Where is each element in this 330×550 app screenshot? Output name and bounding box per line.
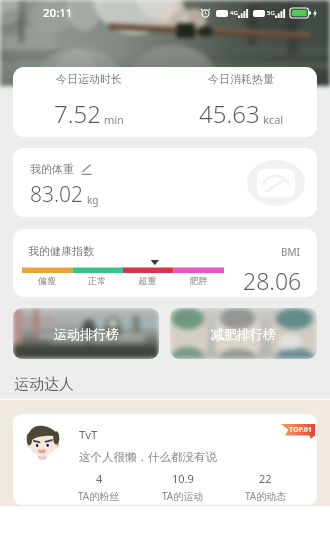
staticText: BMI — [281, 245, 300, 259]
staticText: 5G — [267, 9, 275, 17]
staticText: 7.52 — [54, 97, 101, 130]
staticText: 10.9 — [172, 471, 194, 486]
staticText: 这个人很懒，什么都没有说 — [79, 450, 217, 464]
staticText: 运动达人 — [14, 375, 74, 394]
staticText: 20:11 — [43, 5, 73, 21]
staticText: 运动排行榜 — [54, 326, 119, 342]
staticText: 4 — [96, 471, 103, 486]
staticText: 45.63 — [199, 97, 260, 130]
staticText: 今日消耗热量 — [208, 72, 274, 86]
staticText: 我的健康指数 — [28, 244, 94, 258]
button[interactable]: 今日运动时长 — [13, 67, 317, 137]
staticText: 我的体重 — [30, 162, 74, 176]
staticText: 肥胖 — [173, 275, 224, 286]
staticText: TA的粉丝 — [78, 489, 120, 503]
button[interactable]: 10.9 — [141, 471, 224, 503]
staticText: 正常 — [72, 275, 122, 286]
button[interactable]: 今日消耗热量 — [165, 67, 317, 137]
staticText: 今日运动时长 — [56, 72, 122, 86]
staticText: 22 — [259, 471, 272, 486]
button[interactable]: 22 — [224, 471, 307, 503]
button[interactable]: TvT — [13, 414, 317, 505]
staticText: 超重 — [122, 275, 173, 286]
button[interactable]: 我的体重 — [13, 148, 317, 217]
button[interactable]: 今日运动时长 — [13, 67, 165, 137]
staticText: TA的运动 — [162, 489, 204, 503]
button[interactable]: 运动排行榜 — [13, 308, 159, 359]
staticText: 4G — [230, 9, 238, 17]
staticText: 83.02 — [30, 180, 84, 209]
staticText: min — [104, 112, 124, 127]
staticText: kcal — [263, 112, 284, 127]
staticText: TOP.01 — [289, 425, 312, 435]
staticText: 28.06 — [243, 265, 302, 296]
staticText: 减肥排行榜 — [211, 326, 276, 342]
staticText: 偏瘦 — [22, 275, 72, 286]
staticText: TvT — [79, 427, 98, 443]
button[interactable]: 4 — [57, 471, 141, 503]
button[interactable]: 我的健康指数 — [13, 229, 317, 297]
button[interactable]: Edit weight — [81, 164, 92, 175]
staticText: TA的动态 — [245, 489, 287, 503]
staticText: kg — [87, 193, 99, 207]
button[interactable]: 减肥排行榜 — [170, 308, 317, 359]
